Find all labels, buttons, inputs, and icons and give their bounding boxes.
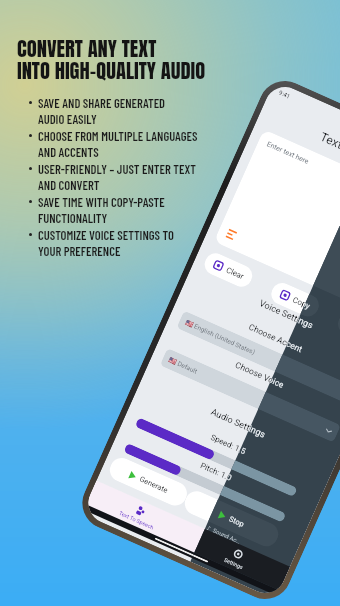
staticText: Voice Settings — [257, 298, 315, 332]
button[interactable]: Settings — [183, 524, 290, 590]
button[interactable]: Generate — [106, 454, 191, 509]
button[interactable]: Clear — [201, 250, 256, 290]
staticText: Choose Voice — [234, 360, 286, 390]
staticText: Text To Speech — [318, 130, 340, 176]
staticText: Text To Speech — [118, 510, 155, 531]
staticText: Generate — [138, 474, 170, 495]
button[interactable]: Copy — [268, 279, 322, 320]
staticText: Clear — [225, 265, 246, 281]
button[interactable]: Text To Speech — [86, 480, 193, 547]
button[interactable]: Generate — [106, 454, 191, 509]
staticText: CUSTOMIZE VOICE SETTINGS TO YOUR PREFERE… — [38, 227, 174, 259]
staticText: Audio Settings — [209, 407, 267, 441]
staticText: Settings — [223, 557, 245, 571]
staticText: Clear — [225, 265, 246, 281]
staticText: 9:41 — [278, 89, 292, 100]
staticText: 🇺🇸 English (United States) — [184, 318, 257, 357]
staticText: CONVERT ANY TEXT INTO HIGH-QUALITY AUDIO — [17, 33, 206, 86]
staticText: Choose Accent — [247, 322, 304, 354]
staticText: USER-FRIENDLY – JUST ENTER TEXT AND CONV… — [38, 161, 197, 193]
button[interactable]: Text To Speech — [86, 480, 193, 547]
staticText: Copy — [291, 295, 312, 311]
staticText: Enter text here — [265, 140, 311, 166]
button[interactable]: 🇺🇸 Default — [160, 348, 340, 443]
staticText: Speed: 1.5 — [209, 433, 248, 456]
button[interactable]: 🇺🇸 English (United States) — [176, 310, 340, 405]
staticText: Audio Settings — [209, 407, 267, 441]
staticText: ♪ Sound Ac… — [206, 524, 242, 545]
button[interactable]: Stop — [181, 487, 282, 550]
staticText: SAVE TIME WITH COPY-PASTE FUNCTIONALITY — [38, 194, 165, 226]
staticText: SAVE AND SHARE GENERATED AUDIO EASILY — [38, 95, 166, 127]
staticText: ♪ Sound Ac… — [206, 524, 242, 545]
button[interactable]: Clear — [201, 250, 256, 290]
staticText: 🇺🇸 English (United States) — [184, 318, 257, 357]
staticText: Text To Speech — [118, 510, 155, 531]
staticText: Voice Settings — [257, 298, 315, 332]
staticText: Stop — [228, 514, 246, 529]
staticText: Choose Accent — [247, 322, 304, 354]
staticText: Pitch: 1.0 — [199, 461, 234, 483]
staticText: Stop — [228, 514, 246, 529]
staticText: 9:41 — [278, 89, 292, 100]
button[interactable]: 🇺🇸 Default — [160, 348, 340, 443]
button[interactable]: Stop — [181, 487, 282, 550]
staticText: Choose Voice — [234, 360, 286, 390]
button[interactable]: Copy — [268, 279, 322, 320]
staticText: 🇺🇸 Default — [167, 356, 199, 376]
staticText: CHOOSE FROM MULTIPLE LANGUAGES AND ACCEN… — [38, 128, 198, 160]
button[interactable]: 🇺🇸 English (United States) — [176, 310, 340, 405]
staticText: Speed: 1.5 — [209, 433, 248, 456]
staticText: Enter text here — [265, 140, 311, 166]
staticText: Text To Speech — [318, 130, 340, 176]
staticText: Pitch: 1.0 — [199, 461, 234, 483]
staticText: Copy — [291, 295, 312, 311]
staticText: Generate — [138, 474, 170, 495]
button[interactable]: Settings — [183, 524, 290, 590]
staticText: 🇺🇸 Default — [167, 356, 199, 376]
button[interactable]: Enter text here — [214, 129, 340, 320]
staticText: Settings — [223, 557, 245, 571]
button[interactable]: Enter text here — [214, 129, 340, 320]
